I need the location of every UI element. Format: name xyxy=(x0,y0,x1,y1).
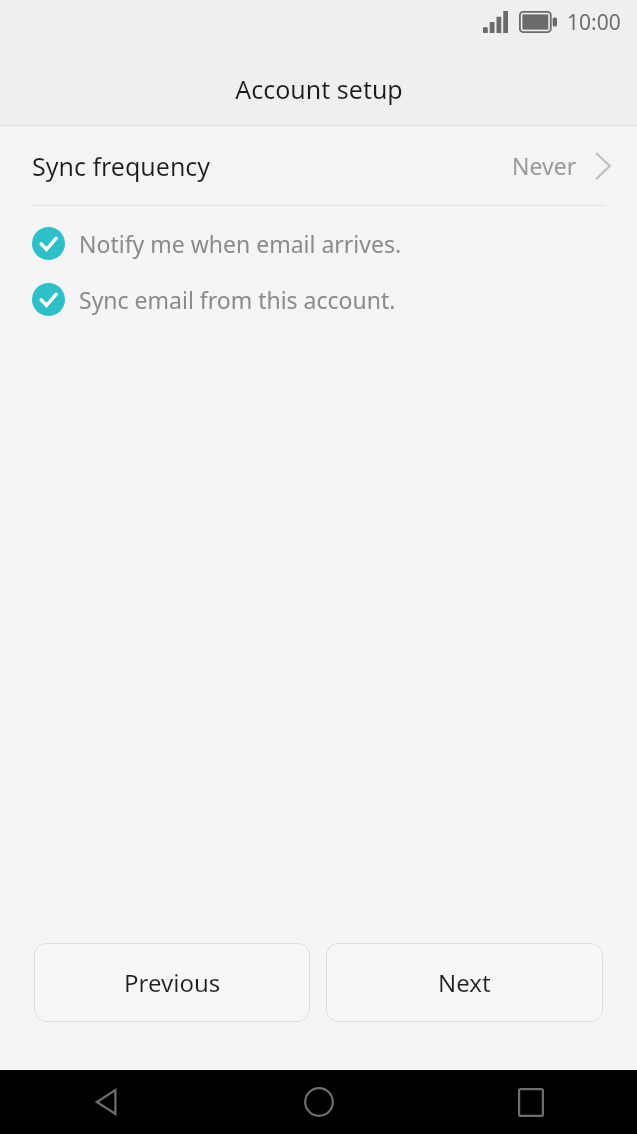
staticText: Next xyxy=(438,966,491,999)
staticText: Sync email from this account. xyxy=(79,284,396,315)
staticText: Sync frequency xyxy=(32,149,211,183)
staticText: Previous xyxy=(124,966,221,999)
staticText: Account setup xyxy=(235,72,403,106)
button[interactable]: Sync email from this account. xyxy=(0,271,637,327)
button[interactable]: Back xyxy=(0,1070,213,1134)
button[interactable]: Recent apps xyxy=(425,1070,637,1134)
button[interactable]: Notify me when email arrives. xyxy=(0,215,637,271)
button[interactable]: Sync frequency xyxy=(0,126,637,205)
button[interactable]: Previous xyxy=(34,943,310,1022)
button[interactable]: Next xyxy=(326,943,603,1022)
staticText: Never xyxy=(512,150,577,181)
staticText: Notify me when email arrives. xyxy=(79,228,402,259)
button[interactable]: Home xyxy=(213,1070,425,1134)
staticText: 10:00 xyxy=(567,8,621,37)
